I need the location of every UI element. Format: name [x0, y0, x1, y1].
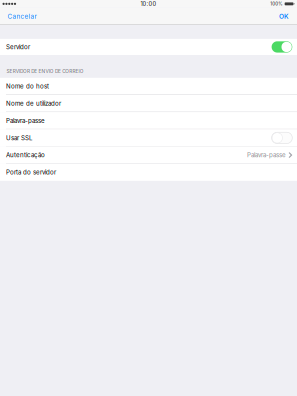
staticText: SERVIDOR DE ENVIO DE CORREIO	[6, 68, 84, 74]
button[interactable]: Servidor	[272, 41, 292, 53]
button[interactable]: Cancelar	[4, 8, 40, 25]
staticText: Palavra-passe	[6, 117, 45, 124]
button[interactable]: OK	[275, 8, 293, 25]
button[interactable]: Nome do host	[0, 78, 297, 95]
button[interactable]: Nome de utilizador	[0, 95, 297, 112]
staticText: 10:00	[140, 0, 156, 7]
staticText: 100%	[270, 1, 282, 6]
button[interactable]: Palavra-passe	[0, 112, 297, 129]
staticText: Nome do host	[6, 83, 49, 90]
staticText: Servidor	[6, 43, 30, 51]
button[interactable]: Porta do servidor	[0, 164, 297, 181]
staticText: Usar SSL	[6, 134, 32, 142]
staticText: Nome de utilizador	[6, 100, 61, 107]
staticText: Cancelar	[7, 12, 36, 20]
button[interactable]: Autenticação	[0, 146, 297, 164]
staticText: Porta do servidor	[6, 168, 56, 176]
staticText: Autenticação	[6, 151, 45, 159]
staticText: Palavra-passe	[247, 151, 286, 159]
button[interactable]: Usar SSL	[272, 132, 292, 143]
staticText: OK	[279, 12, 289, 20]
